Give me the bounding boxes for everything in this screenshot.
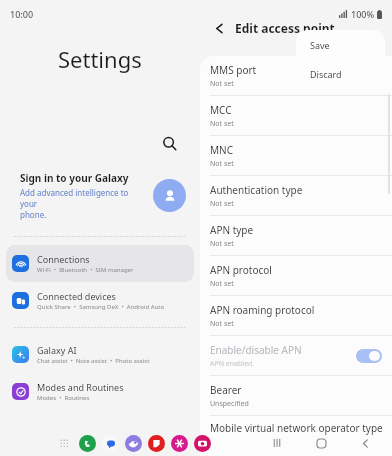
button[interactable]: Sign in to your Galaxy [0,164,200,226]
button[interactable]: Mobile virtual network operator type [200,416,392,455]
staticText: Discard [310,68,342,80]
button[interactable]: Save [296,30,385,59]
button[interactable]: Home [306,430,336,456]
button[interactable]: Galaxy AI [6,336,194,373]
staticText: Modes and Routines [37,381,124,393]
button[interactable]: Phone [79,435,96,452]
staticText: Not set [210,319,234,329]
staticText: Not set [210,239,234,249]
button[interactable]: Authentication type [200,176,392,215]
staticText: Not set [210,79,234,89]
staticText: Not set [210,279,234,289]
staticText: Not set [210,199,234,209]
button[interactable]: Apps [55,434,73,452]
button[interactable]: Messages [102,435,119,452]
staticText: Connected devices [37,290,116,302]
staticText: Quick Share • Samsung DeX • Android Auto [37,303,165,311]
staticText: Enable/disable APN [210,343,302,357]
button[interactable]: Discard [296,59,385,88]
button[interactable]: Enable/disable APN [200,336,392,375]
staticText: MNC [210,143,233,157]
button[interactable]: APN type [200,216,392,255]
staticText: MCC [210,103,232,117]
staticText: Connections [37,253,90,265]
staticText: Modes • Routines [37,394,90,402]
button[interactable]: Back [350,430,380,456]
staticText: MMS port [210,63,257,77]
staticText: Settings [58,44,142,74]
button[interactable]: Camera [194,435,211,452]
button[interactable]: MMS port [200,56,392,95]
staticText: 100% [351,8,375,20]
staticText: Unspecified [210,399,249,409]
staticText: APN protocol [210,263,272,277]
staticText: Sign in to your Galaxy [20,171,129,185]
button[interactable]: Bearer [200,376,392,415]
staticText: Mobile virtual network operator type [210,421,383,435]
staticText: Edit access point [235,20,335,36]
button[interactable]: Search [154,128,184,158]
button[interactable]: Connected devices [6,282,194,319]
button[interactable]: MCC [200,96,392,135]
staticText: Save [310,39,330,51]
button[interactable]: APN roaming protocol [200,296,392,335]
button[interactable]: Gallery [171,435,188,452]
button[interactable]: Notes [148,435,165,452]
staticText: Wi-Fi • Bluetooth • SIM manager [37,266,134,274]
button[interactable]: Connections [6,245,194,282]
button[interactable]: Internet [125,435,142,452]
staticText: APN enabled. [210,359,255,369]
staticText: Not set [210,119,234,129]
button[interactable]: Modes and Routines [6,373,194,410]
staticText: Bearer [210,383,242,397]
button[interactable]: MNC [200,136,392,175]
staticText: 10:00 [10,8,34,20]
staticText: Not set [210,159,234,169]
button[interactable]: Back [206,15,232,41]
staticText: Add advanced intelligence to your phone. [20,187,147,220]
button[interactable]: Recents [262,430,292,456]
staticText: APN roaming protocol [210,303,315,317]
staticText: APN type [210,223,254,237]
staticText: Galaxy AI [37,344,77,356]
staticText: Authentication type [210,183,303,197]
button[interactable]: APN protocol [200,256,392,295]
staticText: Chat assist • Note assist • Photo assist [37,357,150,365]
